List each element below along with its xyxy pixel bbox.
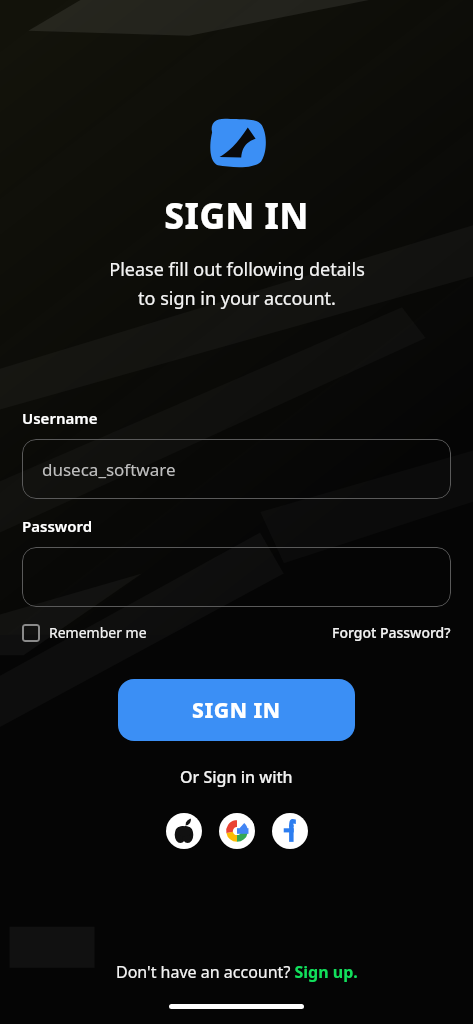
button[interactable]: SIGN IN <box>118 679 355 741</box>
other: App logo <box>207 117 267 169</box>
button[interactable]: duseca_software <box>22 439 451 499</box>
button[interactable]: Sign in with Facebook <box>272 813 308 849</box>
staticText: Password <box>22 516 93 536</box>
staticText: duseca_software <box>42 458 176 481</box>
staticText: Forgot Password? <box>332 623 451 642</box>
staticText: SIGN IN <box>192 696 281 725</box>
button[interactable]: Sign in with Apple <box>166 813 202 849</box>
button[interactable] <box>22 547 451 607</box>
staticText: Username <box>22 408 98 428</box>
staticText: Remember me <box>49 623 147 642</box>
staticText: SIGN IN <box>164 192 309 240</box>
staticText: Please fill out following details to sig… <box>109 257 365 310</box>
staticText: Don't have an account? Sign up. <box>116 961 358 983</box>
button[interactable]: Sign in with Google <box>219 813 255 849</box>
button[interactable]: Remember me <box>22 623 147 642</box>
button[interactable]: Forgot Password? <box>332 623 451 642</box>
button[interactable]: Don't have an account? Sign up. <box>116 961 358 983</box>
staticText: Or Sign in with <box>180 766 293 788</box>
